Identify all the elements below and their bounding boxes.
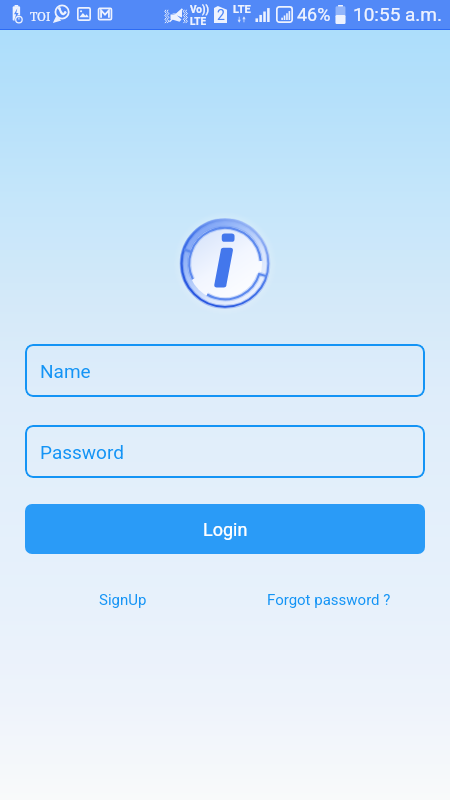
other: Vibrate mode: [163, 5, 188, 25]
staticText: 10:55 a.m.: [353, 3, 443, 25]
staticText: Forgot password ?: [267, 591, 391, 609]
staticText: Name: [40, 360, 91, 382]
staticText: 2: [217, 7, 225, 23]
button[interactable]: Login: [25, 504, 425, 554]
button[interactable]: Password: [25, 425, 425, 478]
button[interactable]: Forgot password ?: [261, 586, 397, 614]
staticText: 46%: [297, 4, 331, 25]
staticText: TOI: [30, 8, 51, 24]
button[interactable]: SignUp: [93, 586, 153, 614]
staticText: LTE: [233, 3, 251, 16]
button[interactable]: Name: [25, 344, 425, 397]
staticText: LTE: [190, 16, 207, 28]
staticText: Login: [203, 519, 248, 540]
other: WhatsApp: [52, 4, 70, 24]
staticText: Vo)): [190, 4, 209, 16]
staticText: SignUp: [99, 591, 147, 609]
staticText: Password: [40, 441, 124, 463]
